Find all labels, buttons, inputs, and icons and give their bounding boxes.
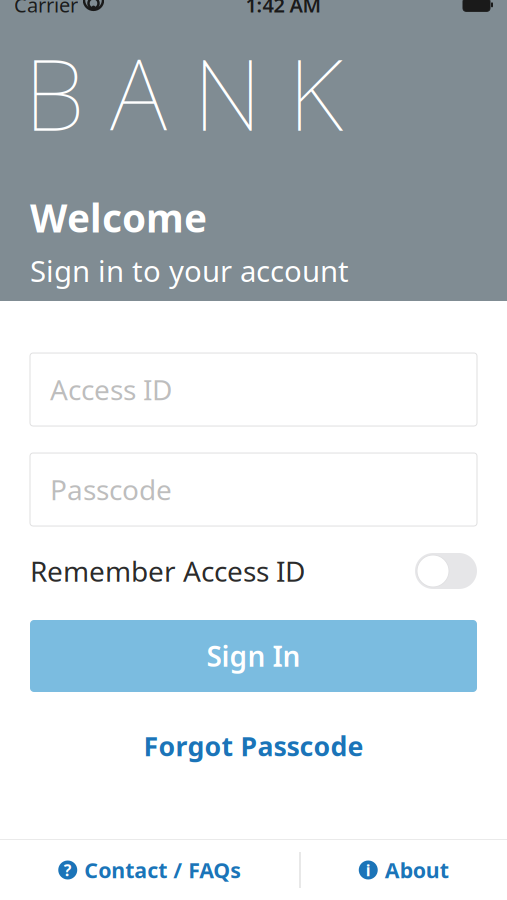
staticText: i — [366, 859, 371, 881]
button[interactable]: ? — [48, 846, 251, 894]
staticText: Sign In — [206, 637, 300, 675]
staticText: Carrier — [14, 0, 78, 18]
staticText: Remember Access ID — [30, 552, 305, 590]
button[interactable]: Forgot Passcode — [30, 726, 477, 766]
staticText: 1:42 AM — [245, 0, 321, 18]
staticText: Welcome — [30, 192, 207, 243]
button[interactable]: i — [349, 846, 459, 894]
staticText: Access ID — [50, 371, 172, 408]
button[interactable]: Remember Access ID — [30, 548, 477, 594]
button[interactable]: Sign In — [30, 620, 477, 692]
staticText: B A N K — [24, 27, 343, 158]
staticText: Forgot Passcode — [143, 728, 363, 764]
staticText: ? — [64, 859, 72, 881]
staticText: Sign in to your account — [30, 251, 349, 290]
button[interactable]: Access ID — [30, 353, 477, 426]
staticText: Contact / FAQs — [84, 856, 241, 884]
button[interactable]: Passcode — [30, 453, 477, 526]
staticText: About — [385, 856, 449, 884]
staticText: Passcode — [50, 471, 172, 508]
